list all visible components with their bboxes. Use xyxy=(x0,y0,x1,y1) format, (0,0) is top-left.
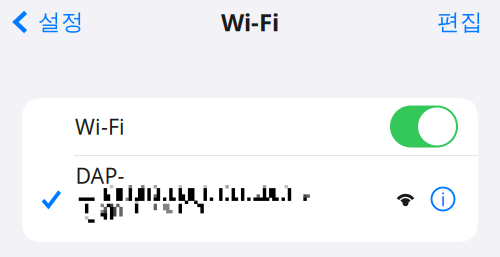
staticText: i xyxy=(440,187,445,211)
staticText: Wi-Fi xyxy=(75,112,125,141)
staticText: 편집 xyxy=(437,8,483,36)
button[interactable]: Wi-Fi xyxy=(390,105,458,147)
button[interactable]: 편집 xyxy=(425,0,500,44)
staticText: 설정 xyxy=(38,8,84,36)
staticText: DAP- xyxy=(76,161,125,190)
button[interactable]: More info xyxy=(416,178,455,211)
staticText: Wi-Fi xyxy=(221,6,279,38)
button[interactable]: 설정 xyxy=(0,0,92,44)
